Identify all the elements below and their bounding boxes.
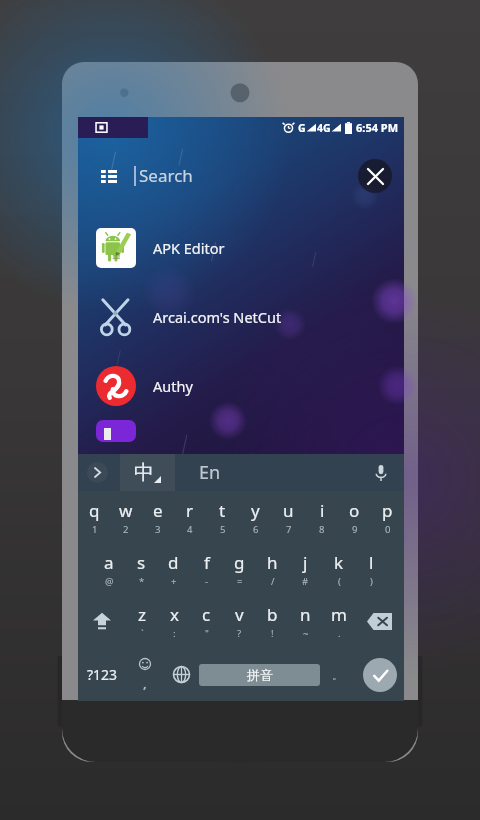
button[interactable]: Change view <box>92 159 126 193</box>
staticText: 1 <box>92 523 98 536</box>
button[interactable]: x <box>158 595 190 648</box>
button[interactable]: l <box>355 543 388 595</box>
button[interactable]: ?123 <box>78 648 127 701</box>
staticText: + <box>171 575 177 588</box>
staticText: u <box>283 499 294 522</box>
staticText: z <box>138 603 146 626</box>
button[interactable]: q <box>78 491 110 543</box>
button[interactable]: h <box>256 543 289 595</box>
staticText: k <box>334 551 344 574</box>
staticText: p <box>382 499 393 522</box>
button[interactable]: y <box>239 491 272 543</box>
staticText: 拼音 <box>247 667 273 683</box>
staticText: b <box>267 603 278 626</box>
staticText: s <box>137 551 146 574</box>
staticText: g <box>234 551 245 574</box>
staticText: l <box>369 551 374 574</box>
staticText: Search <box>139 164 193 187</box>
staticText: x <box>170 603 179 626</box>
staticText: r <box>186 499 194 522</box>
staticText: h <box>267 551 278 574</box>
staticText: c <box>202 603 211 626</box>
staticText: w <box>119 499 133 522</box>
button[interactable]: g <box>223 543 256 595</box>
button[interactable]: Expand toolbar <box>78 454 116 491</box>
button[interactable]: p <box>371 491 404 543</box>
staticText: 2 <box>123 523 129 536</box>
staticText: . <box>338 627 341 640</box>
button[interactable]: Enter <box>355 648 404 701</box>
button[interactable]: s <box>125 543 157 595</box>
button[interactable]: j <box>289 543 322 595</box>
staticText: f <box>204 551 210 574</box>
staticText: 8 <box>319 523 325 536</box>
button[interactable]: v <box>223 595 256 648</box>
staticText: APK Editor <box>153 238 225 258</box>
button[interactable]: m <box>322 595 355 648</box>
staticText: * <box>139 575 145 588</box>
staticText: ?123 <box>87 665 118 684</box>
button[interactable]: f <box>190 543 223 595</box>
button[interactable]: e <box>142 491 174 543</box>
staticText: 3 <box>155 523 161 536</box>
button[interactable]: En <box>175 454 358 491</box>
staticText: 6:54 PM <box>356 120 399 135</box>
staticText: d <box>168 551 179 574</box>
staticText: : <box>173 627 176 640</box>
staticText: i <box>320 499 325 522</box>
button[interactable]: Authy <box>78 351 404 420</box>
staticText: = <box>237 575 243 588</box>
staticText: # <box>302 575 309 588</box>
staticText: ~ <box>303 627 309 640</box>
staticText: ) <box>370 575 373 588</box>
staticText: 4G <box>317 121 331 135</box>
button[interactable]: APK Editor <box>78 213 404 282</box>
button[interactable]: n <box>289 595 322 648</box>
button[interactable]: Close search <box>358 159 392 193</box>
button[interactable]: Voice input <box>358 454 404 491</box>
button[interactable]: Arcai.com's NetCut <box>78 282 404 351</box>
staticText: ? <box>237 627 242 640</box>
staticText: , <box>143 674 147 692</box>
staticText: - <box>205 575 209 588</box>
button[interactable]: z <box>126 595 158 648</box>
button[interactable]: Switch language <box>163 648 199 701</box>
button[interactable]: k <box>322 543 355 595</box>
staticText: Arcai.com's NetCut <box>153 307 282 327</box>
button[interactable]: Backspace <box>355 595 404 648</box>
staticText: 0 <box>385 523 391 536</box>
staticText: q <box>89 499 100 522</box>
staticText: e <box>153 499 163 522</box>
staticText: 5 <box>220 523 226 536</box>
staticText: ( <box>338 575 341 588</box>
staticText: j <box>303 551 308 574</box>
button[interactable]: r <box>174 491 206 543</box>
staticText: / <box>271 575 275 588</box>
staticText: a <box>104 551 114 574</box>
button[interactable]: w <box>110 491 142 543</box>
button[interactable]: 。 <box>320 648 355 701</box>
staticText: 中 <box>134 460 154 485</box>
button[interactable]: b <box>256 595 289 648</box>
button[interactable]: t <box>206 491 239 543</box>
staticText: G <box>298 121 306 135</box>
staticText: m <box>331 603 347 626</box>
staticText: Authy <box>153 376 193 396</box>
button[interactable]: c <box>190 595 223 648</box>
button[interactable]: o <box>338 491 371 543</box>
button[interactable]: 拼音 <box>199 664 320 686</box>
staticText: ! <box>271 627 274 640</box>
button[interactable]: u <box>272 491 305 543</box>
button[interactable]: a <box>93 543 125 595</box>
button[interactable]: d <box>157 543 190 595</box>
staticText: t <box>219 499 226 522</box>
button[interactable]: 中 <box>120 454 175 491</box>
button[interactable] <box>96 420 404 444</box>
staticText: y <box>251 499 260 522</box>
staticText: n <box>300 603 311 626</box>
button[interactable]: i <box>305 491 338 543</box>
staticText: 7 <box>286 523 292 536</box>
button[interactable]: Emoji <box>127 648 163 701</box>
staticText: ` <box>141 627 144 640</box>
button[interactable]: Shift <box>78 595 126 648</box>
